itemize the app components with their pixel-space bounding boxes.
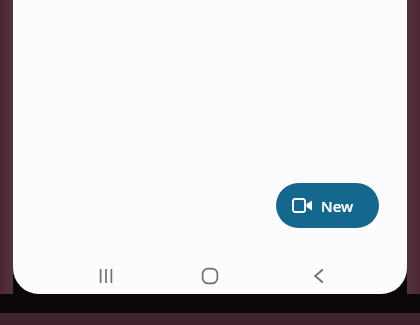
button[interactable]: Recent apps [79, 258, 133, 294]
button[interactable]: Back [292, 258, 346, 294]
button[interactable]: New [276, 183, 379, 228]
staticText: New [321, 196, 354, 216]
button[interactable]: Home [183, 258, 237, 294]
